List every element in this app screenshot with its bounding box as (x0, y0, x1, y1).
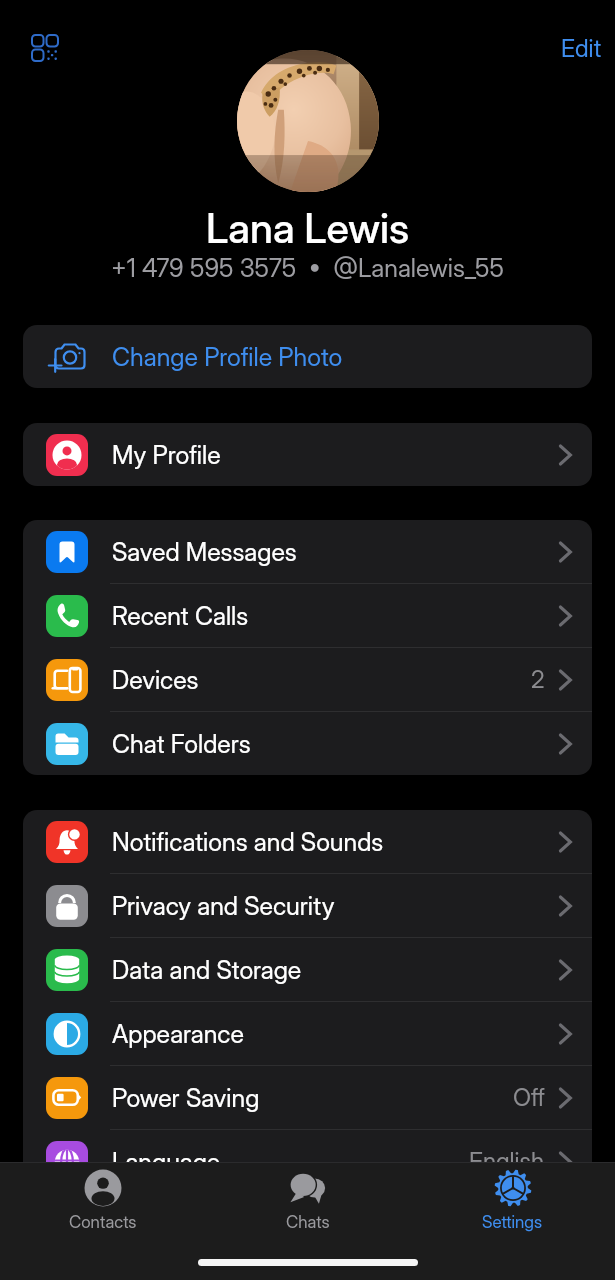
button[interactable]: Scan QR code (19, 22, 71, 74)
button[interactable]: Appearance (23, 1002, 592, 1065)
button[interactable]: Saved Messages (23, 520, 592, 583)
button[interactable]: Chats (205, 1163, 410, 1233)
button[interactable]: Language (23, 1130, 592, 1193)
staticText: Chat Folders (112, 729, 251, 759)
staticText: Change Profile Photo (112, 342, 343, 372)
button[interactable]: My Profile (23, 423, 592, 486)
staticText: Devices (112, 665, 199, 695)
button[interactable]: Recent Calls (23, 584, 592, 647)
staticText: Recent Calls (112, 601, 249, 631)
button[interactable]: Profile photo (237, 50, 379, 192)
button[interactable]: Notifications and Sounds (23, 810, 592, 873)
button[interactable]: Change Profile Photo (23, 325, 592, 388)
staticText: Contacts (69, 1212, 137, 1233)
staticText: 2 (531, 665, 545, 694)
button[interactable]: Chat Folders (23, 712, 592, 775)
button[interactable]: Power Saving (23, 1066, 592, 1129)
staticText: Language (112, 1147, 221, 1177)
staticText: Lana Lewis (206, 203, 410, 253)
staticText: Chats (286, 1212, 330, 1233)
staticText: Power Saving (112, 1083, 260, 1113)
staticText: Data and Storage (112, 955, 302, 985)
staticText: Notifications and Sounds (112, 827, 384, 857)
staticText: +1 479 595 3575 • @Lanalewis_55 (111, 253, 504, 283)
button[interactable]: Devices (23, 648, 592, 711)
button[interactable]: Settings (410, 1163, 615, 1233)
button[interactable]: Edit (561, 34, 602, 63)
button[interactable]: Data and Storage (23, 938, 592, 1001)
staticText: Edit (561, 34, 602, 63)
button[interactable]: Contacts (0, 1163, 205, 1233)
staticText: Privacy and Security (112, 891, 335, 921)
staticText: Saved Messages (112, 537, 297, 567)
staticText: Off (513, 1083, 545, 1112)
staticText: English (469, 1147, 545, 1176)
button[interactable]: Privacy and Security (23, 874, 592, 937)
staticText: Settings (482, 1212, 543, 1233)
staticText: My Profile (112, 440, 221, 470)
staticText: Appearance (112, 1019, 244, 1049)
